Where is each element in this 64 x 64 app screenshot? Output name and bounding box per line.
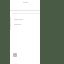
button[interactable] <box>12 17 40 22</box>
button[interactable] <box>12 22 40 27</box>
button[interactable]: Add <box>13 53 17 57</box>
